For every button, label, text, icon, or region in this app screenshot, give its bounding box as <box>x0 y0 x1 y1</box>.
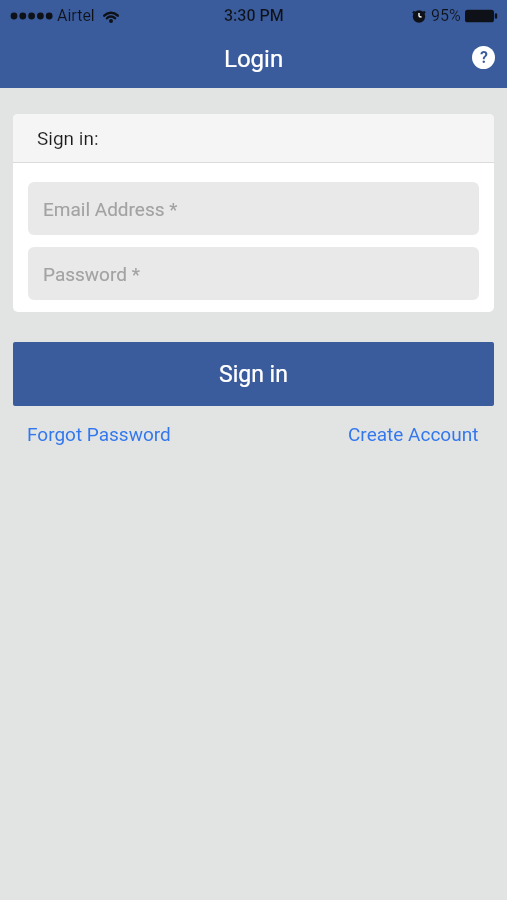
staticText: 3:30 PM <box>224 6 284 25</box>
button[interactable]: Email Address * <box>28 182 479 235</box>
button[interactable]: Create Account <box>348 423 479 445</box>
button[interactable]: ? <box>472 46 495 69</box>
button[interactable]: Password * <box>28 247 479 300</box>
staticText: Sign in: <box>37 127 99 149</box>
staticText: Sign in <box>219 361 288 388</box>
staticText: Login <box>224 45 284 73</box>
staticText: Email Address * <box>43 198 178 220</box>
staticText: Password * <box>43 263 140 285</box>
staticText: 95% <box>431 6 461 25</box>
staticText: Airtel <box>57 6 95 25</box>
button[interactable]: Forgot Password <box>27 423 171 445</box>
button[interactable]: Sign in <box>13 342 494 406</box>
staticText: ? <box>480 48 488 67</box>
